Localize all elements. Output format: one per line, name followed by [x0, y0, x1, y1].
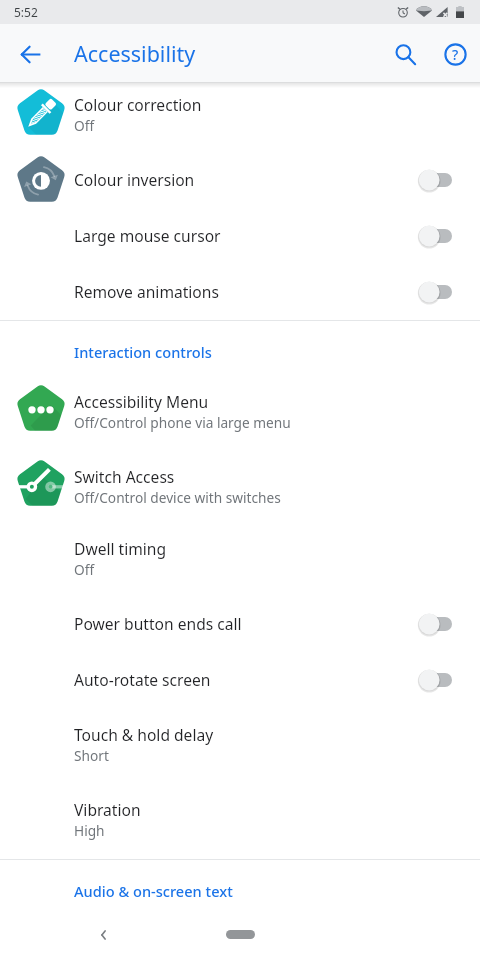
staticText: 5:52	[14, 4, 38, 20]
staticText: Auto-rotate screen	[74, 669, 211, 690]
staticText: Accessibility Menu	[74, 391, 209, 412]
staticText: Dwell timing	[74, 538, 167, 559]
staticText: ?	[452, 45, 459, 64]
button[interactable]: Search	[384, 33, 426, 75]
staticText: Remove animations	[74, 281, 219, 302]
staticText: Colour inversion	[74, 169, 195, 190]
staticText: Vibration	[74, 799, 141, 820]
staticText: Power button ends call	[74, 613, 242, 634]
button[interactable]: Help	[434, 33, 476, 75]
staticText: Off/Control device with switches	[74, 488, 281, 507]
staticText: Touch & hold delay	[74, 724, 214, 745]
staticText: Large mouse cursor	[74, 225, 221, 246]
button[interactable]: Power button ends call	[0, 596, 480, 652]
button[interactable]: Colour inversion	[0, 152, 480, 208]
button[interactable]: Colour correction	[0, 82, 480, 152]
staticText: Off/Control phone via large menu	[74, 413, 291, 432]
staticText: High	[74, 821, 105, 840]
button[interactable]: Switch Access	[0, 451, 480, 526]
staticText: Accessibility	[74, 39, 196, 68]
button[interactable]: Accessibility Menu	[0, 377, 480, 451]
button[interactable]: Auto-rotate screen	[0, 652, 480, 708]
staticText: Switch Access	[74, 466, 175, 487]
button[interactable]: Home	[226, 930, 255, 939]
button[interactable]: Dwell timing	[0, 526, 480, 596]
button[interactable]: Interaction controls	[0, 320, 480, 377]
staticText: Short	[74, 746, 109, 765]
button[interactable]: Back	[9, 33, 51, 75]
staticText: Audio & on-screen text	[74, 881, 233, 901]
staticText: Interaction controls	[74, 342, 212, 362]
button[interactable]: Audio & on-screen text	[0, 860, 480, 915]
staticText: Colour correction	[74, 94, 202, 115]
button[interactable]: Large mouse cursor	[0, 208, 480, 264]
button[interactable]: Remove animations	[0, 264, 480, 320]
staticText: Off	[74, 560, 95, 579]
staticText: Off	[74, 116, 95, 135]
button[interactable]: Vibration	[0, 784, 480, 859]
button[interactable]: Back	[87, 919, 119, 951]
button[interactable]: Touch & hold delay	[0, 709, 480, 784]
